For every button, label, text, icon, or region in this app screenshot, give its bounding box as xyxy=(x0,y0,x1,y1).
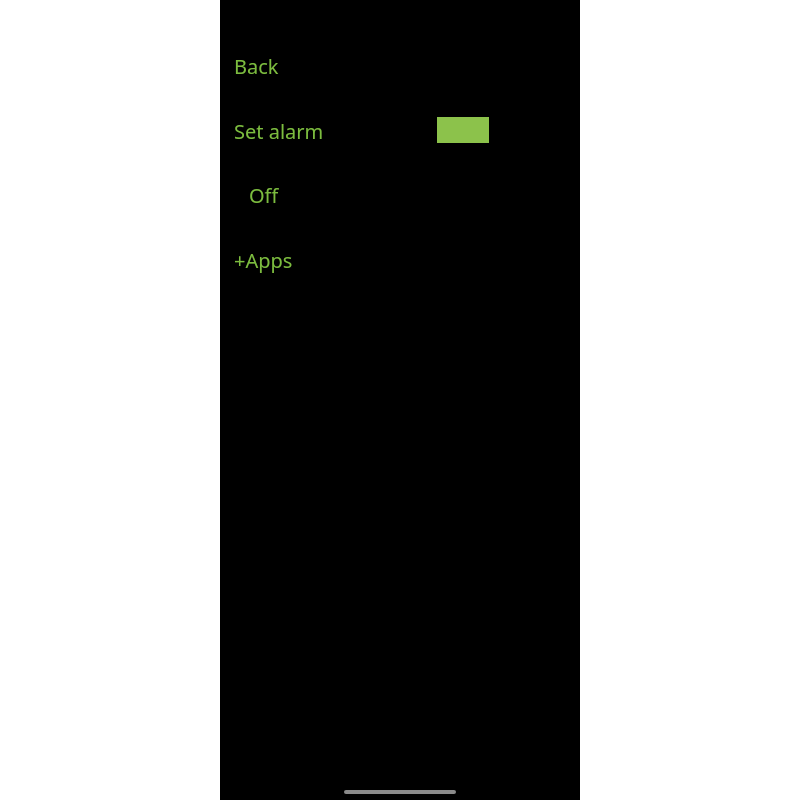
button[interactable]: Off xyxy=(220,182,580,208)
staticText: +Apps xyxy=(234,247,293,273)
button[interactable]: Set alarm xyxy=(220,118,580,144)
button[interactable]: Back xyxy=(220,53,580,79)
staticText: Back xyxy=(234,53,279,79)
staticText: Set alarm xyxy=(234,118,324,144)
staticText: Off xyxy=(249,182,279,208)
button[interactable]: +Apps xyxy=(220,247,580,273)
